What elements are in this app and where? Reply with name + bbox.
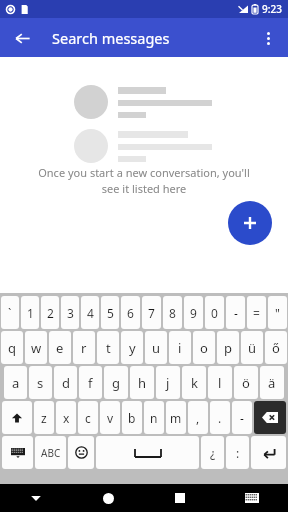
button[interactable]: 2 [41, 296, 59, 329]
staticText: 3 [67, 305, 74, 321]
button[interactable]: Backspace [254, 401, 286, 434]
staticText: " [275, 305, 280, 321]
button[interactable]: - [226, 296, 245, 329]
button[interactable]: v [100, 401, 120, 434]
staticText: b [128, 410, 136, 426]
staticText: ü [248, 339, 257, 357]
button[interactable]: Enter [251, 436, 286, 469]
button[interactable]: 4 [81, 296, 99, 329]
staticText: l [218, 374, 222, 392]
staticText: o [200, 339, 208, 357]
staticText: h [138, 374, 147, 392]
button[interactable]: - [232, 401, 252, 434]
button[interactable]: t [97, 331, 119, 364]
button[interactable]: Back [0, 484, 72, 512]
staticText: g [112, 374, 120, 392]
staticText: . [218, 410, 222, 426]
button[interactable]: i [169, 331, 191, 364]
button[interactable]: More options [252, 22, 284, 54]
button[interactable]: q [1, 331, 23, 364]
button[interactable]: Keyboard [216, 484, 288, 512]
staticText: i [178, 339, 182, 357]
button[interactable]: 6 [121, 296, 140, 329]
staticText: ¿ [210, 445, 216, 461]
staticText: : [236, 445, 240, 461]
button[interactable]: , [188, 401, 208, 434]
staticText: d [62, 374, 70, 392]
button[interactable]: ABC [35, 436, 66, 469]
button[interactable]: ő [265, 331, 287, 364]
staticText: = [253, 305, 260, 321]
button[interactable]: e [49, 331, 71, 364]
staticText: m [170, 410, 182, 426]
button[interactable]: 3 [61, 296, 79, 329]
button[interactable]: Space [96, 436, 199, 469]
staticText: ő [272, 339, 280, 357]
button[interactable]: k [182, 366, 206, 399]
button[interactable]: 0 [205, 296, 224, 329]
staticText: y [129, 339, 136, 357]
button[interactable]: . [210, 401, 230, 434]
button[interactable]: 1 [21, 296, 39, 329]
button[interactable]: ¿ [201, 436, 224, 469]
button[interactable]: p [217, 331, 239, 364]
button[interactable]: n [144, 401, 164, 434]
staticText: t [106, 339, 111, 357]
button[interactable]: Home [72, 484, 144, 512]
button[interactable]: s [29, 366, 52, 399]
button[interactable]: f [79, 366, 102, 399]
button[interactable]: : [226, 436, 249, 469]
button[interactable]: = [247, 296, 266, 329]
staticText: q [8, 339, 16, 357]
staticText: 0 [211, 305, 218, 321]
button[interactable]: Back [6, 22, 38, 54]
button[interactable]: y [121, 331, 143, 364]
staticText: w [31, 339, 42, 357]
staticText: 1 [27, 305, 34, 321]
button[interactable]: l [208, 366, 232, 399]
button[interactable]: g [104, 366, 128, 399]
button[interactable]: x [56, 401, 76, 434]
button[interactable]: Switch keyboard [2, 436, 33, 469]
button[interactable]: 9 [184, 296, 203, 329]
staticText: 4 [87, 305, 94, 321]
staticText: ö [242, 374, 250, 392]
button[interactable]: " [268, 296, 287, 329]
button[interactable]: a [4, 366, 27, 399]
button[interactable]: h [130, 366, 154, 399]
staticText: ` [8, 305, 12, 321]
button[interactable]: New conversation [228, 201, 272, 245]
staticText: n [150, 410, 158, 426]
staticText: r [81, 339, 87, 357]
button[interactable]: r [73, 331, 95, 364]
staticText: p [224, 339, 232, 357]
button[interactable]: ` [1, 296, 19, 329]
staticText: 9:23 [262, 2, 282, 16]
button[interactable]: d [54, 366, 77, 399]
button[interactable]: w [25, 331, 47, 364]
staticText: - [234, 305, 238, 321]
button[interactable]: 5 [101, 296, 119, 329]
button[interactable]: Shift [2, 401, 32, 434]
staticText: ABC [41, 446, 61, 460]
button[interactable]: m [166, 401, 186, 434]
staticText: c [85, 410, 91, 426]
button[interactable]: b [122, 401, 142, 434]
staticText: 5 [107, 305, 114, 321]
button[interactable]: Emoji [68, 436, 94, 469]
button[interactable]: z [34, 401, 54, 434]
button[interactable]: o [193, 331, 215, 364]
staticText: 7 [148, 305, 155, 321]
button[interactable]: Recents [144, 484, 216, 512]
button[interactable]: u [145, 331, 167, 364]
staticText: 9 [190, 305, 197, 321]
button[interactable]: c [78, 401, 98, 434]
button[interactable]: ü [241, 331, 263, 364]
button[interactable]: j [156, 366, 180, 399]
staticText: Search messages [52, 28, 170, 48]
button[interactable]: ä [260, 366, 284, 399]
button[interactable]: ö [234, 366, 258, 399]
button[interactable]: 7 [142, 296, 161, 329]
button[interactable]: 8 [163, 296, 182, 329]
staticText: z [41, 410, 47, 426]
